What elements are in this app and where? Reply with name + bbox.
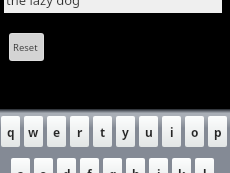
staticText: i [170,124,174,140]
button[interactable]: l [195,158,214,173]
button[interactable]: h [126,158,145,173]
button[interactable]: r [70,116,89,147]
button[interactable]: a [11,158,30,173]
staticText: r [77,124,83,140]
staticText: o [191,124,199,140]
button[interactable]: u [139,116,158,147]
button[interactable]: t [93,116,112,147]
button[interactable]: g [103,158,122,173]
staticText: g [109,166,117,173]
button[interactable]: f [80,158,99,173]
staticText: t [100,124,106,140]
button[interactable]: o [185,116,204,147]
staticText: h [132,166,140,173]
staticText: q [7,124,15,140]
staticText: f [87,166,92,173]
staticText: Reset [13,41,38,54]
button[interactable]: q [1,116,20,147]
staticText: k [178,166,186,173]
staticText: the lazy dog [6,0,81,9]
staticText: a [17,166,25,173]
button[interactable]: p [208,116,227,147]
staticText: u [145,124,153,140]
staticText: d [63,166,71,173]
button[interactable]: e [47,116,66,147]
staticText: w [28,124,39,140]
button[interactable]: s [34,158,53,173]
button[interactable]: j [149,158,168,173]
button[interactable]: y [116,116,135,147]
staticText: s [40,166,47,173]
button[interactable]: i [162,116,181,147]
button[interactable]: d [57,158,76,173]
button[interactable]: w [24,116,43,147]
staticText: j [157,166,161,173]
button[interactable]: k [172,158,191,173]
staticText: e [53,124,61,140]
button[interactable]: the lazy dog [4,0,222,13]
staticText: p [214,124,222,140]
button[interactable]: Reset [9,33,44,61]
staticText: y [122,124,129,140]
staticText: l [203,166,207,173]
